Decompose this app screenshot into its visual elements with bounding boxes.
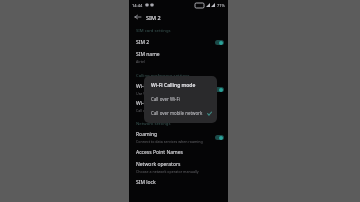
- button[interactable]: Roaming: [129, 129, 228, 146]
- staticText: Use Wi-Fi for calls: [136, 91, 166, 96]
- button[interactable]: SIM 2: [129, 36, 228, 49]
- button[interactable]: Wi-Fi calling: [129, 81, 228, 98]
- staticText: 71%: [217, 3, 225, 8]
- staticText: Network operators: [136, 161, 181, 168]
- button[interactable]: SIM 2 toggle: [215, 40, 224, 45]
- button[interactable]: Wi-Fi calling toggle: [215, 87, 224, 92]
- staticText: Access Point Names: [136, 149, 183, 156]
- button[interactable]: Roaming toggle: [215, 135, 224, 140]
- staticText: SIM lock: [136, 179, 156, 186]
- staticText: Call over Wi-Fi: [151, 96, 212, 102]
- button[interactable]: Wi-Fi Calling mode: [129, 98, 228, 115]
- staticText: Wi-Fi Calling mode: [136, 100, 180, 107]
- staticText: Wi-Fi calling: [136, 83, 164, 90]
- staticText: Call over mobile network: [136, 108, 178, 113]
- button[interactable]: Network operators: [129, 159, 228, 176]
- staticText: Call over mobile network: [151, 110, 207, 116]
- staticText: 14:44: [132, 3, 143, 8]
- staticText: Calling preference settings: [136, 73, 190, 79]
- staticText: Network settings: [136, 121, 171, 127]
- staticText: Wi-Fi Calling mode: [151, 82, 196, 89]
- button[interactable]: Call over mobile network: [144, 106, 217, 120]
- button[interactable]: SIM lock: [129, 176, 228, 189]
- staticText: SIM card settings: [136, 28, 171, 34]
- button[interactable]: Access Point Names: [129, 146, 228, 159]
- staticText: SIM 2: [146, 14, 161, 21]
- staticText: Choose a network operator manually: [136, 169, 199, 174]
- staticText: Airtel: [136, 59, 145, 64]
- staticText: SIM name: [136, 51, 160, 58]
- staticText: Connect to data services when roaming: [136, 139, 203, 144]
- button[interactable]: Back: [133, 12, 143, 22]
- staticText: Roaming: [136, 131, 158, 138]
- button[interactable]: Call over Wi-Fi: [144, 92, 217, 106]
- button[interactable]: SIM name: [129, 49, 228, 66]
- staticText: SIM 2: [136, 39, 150, 46]
